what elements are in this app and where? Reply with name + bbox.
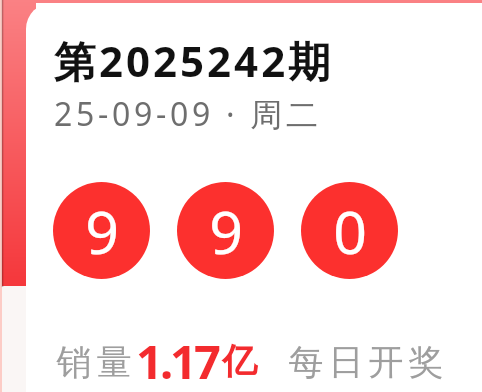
button[interactable]: 0 <box>301 182 398 279</box>
staticText: 亿 <box>222 339 257 383</box>
staticText: 0 <box>333 191 367 271</box>
button[interactable]: 第2025242期 <box>26 3 482 392</box>
staticText: 1.17 <box>136 329 218 392</box>
staticText: 25-09-09 · 周二 <box>54 92 322 136</box>
staticText: 销量 <box>54 340 134 384</box>
staticText: 9 <box>85 191 119 271</box>
staticText: 9 <box>209 191 243 271</box>
staticText: 第2025242期 <box>54 32 334 89</box>
button[interactable]: 9 <box>53 182 150 279</box>
button[interactable]: Previous draw <box>2 0 36 286</box>
staticText: 每日开奖 <box>286 340 446 384</box>
button[interactable]: 9 <box>177 182 274 279</box>
